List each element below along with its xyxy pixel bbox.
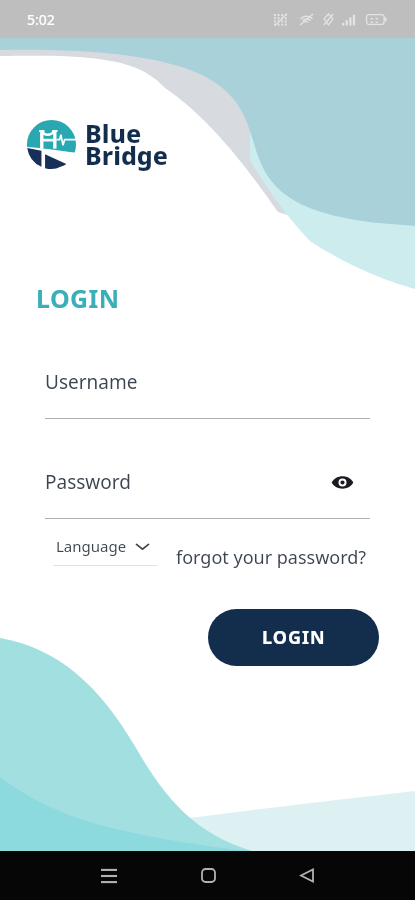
staticText: Username [45, 369, 138, 395]
button[interactable]: forgot your password? [176, 545, 367, 570]
button[interactable]: Show password [329, 469, 356, 496]
staticText: LOGIN [262, 625, 326, 650]
staticText: Password [45, 469, 131, 495]
staticText: Bridge [85, 138, 168, 172]
staticText: forgot your password? [176, 545, 367, 570]
button[interactable]: Recents [78, 851, 139, 900]
staticText: Blue [85, 116, 142, 150]
staticText: Language [56, 536, 127, 556]
button[interactable]: Home [178, 851, 239, 900]
button[interactable]: LOGIN [208, 609, 379, 666]
button[interactable]: Back [276, 851, 337, 900]
staticText: LOGIN [36, 281, 120, 315]
staticText: 5:02 [27, 10, 55, 29]
button[interactable]: Language [56, 536, 149, 556]
